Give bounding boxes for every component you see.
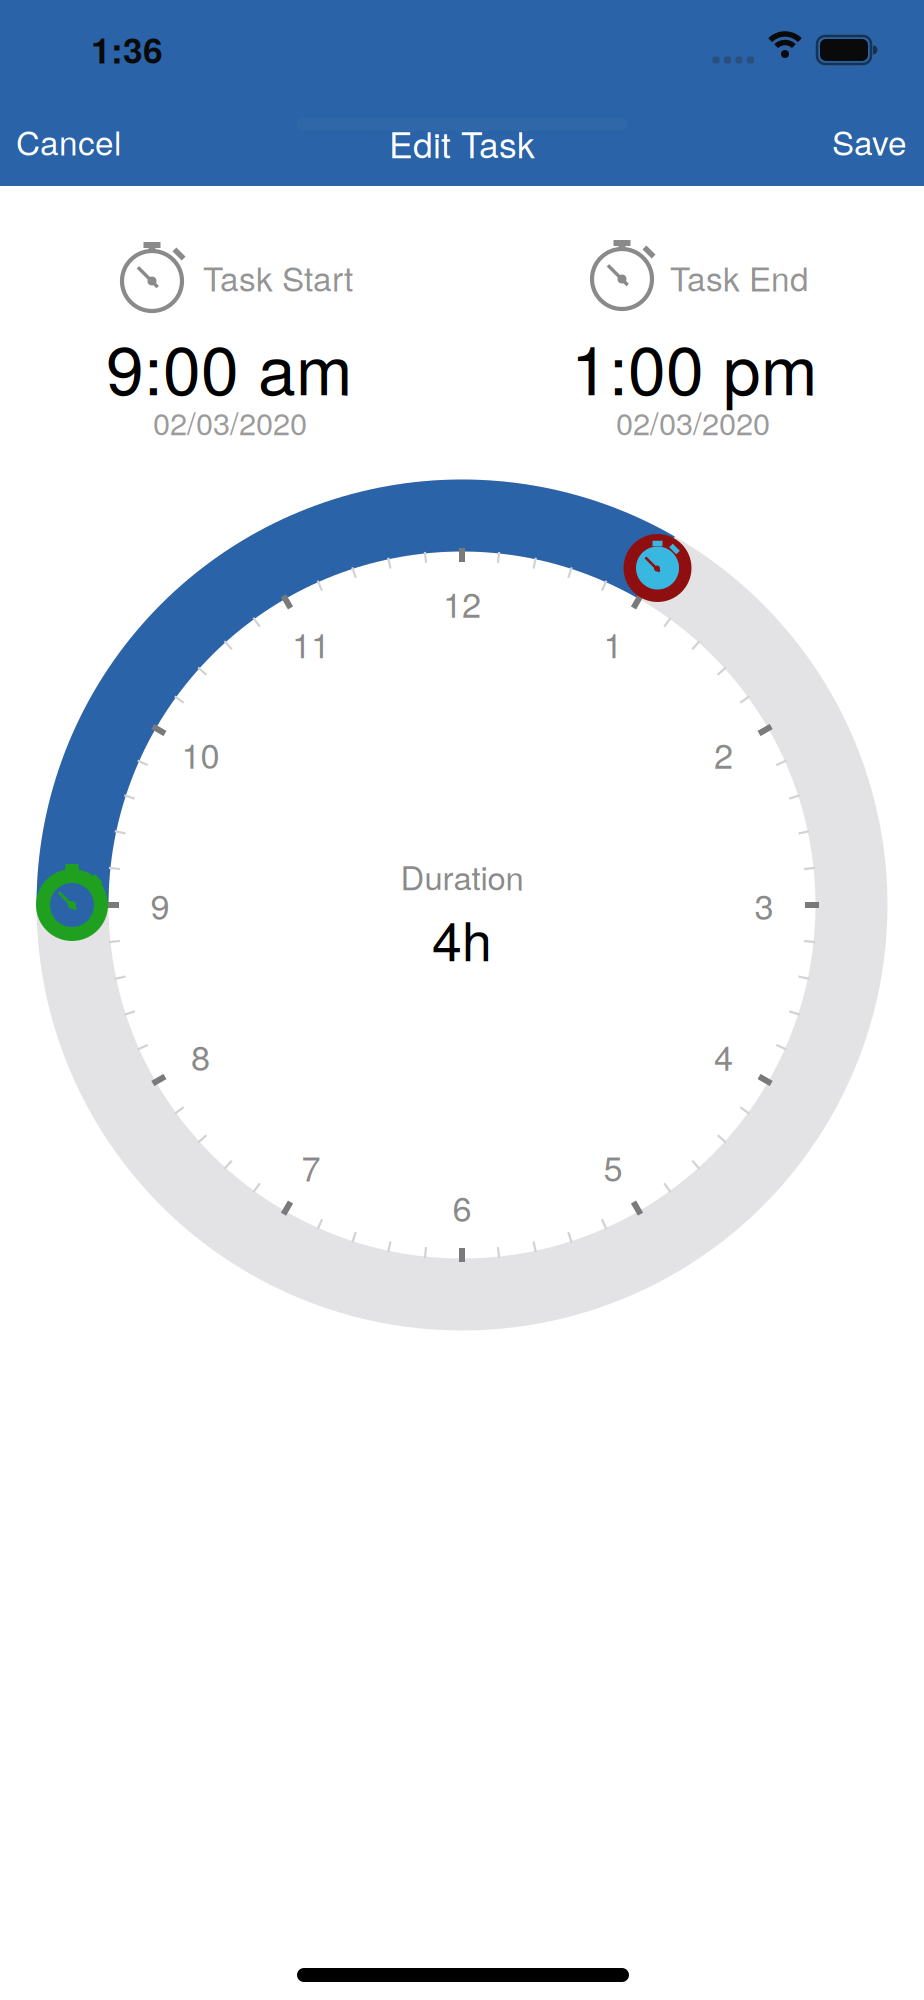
staticText: 7 [301,1142,320,1191]
staticText: 2 [714,729,733,779]
staticText: 02/03/2020 [153,400,307,444]
staticText: 9 [150,880,169,930]
staticText: Duration [400,852,523,899]
staticText: 3 [754,880,773,930]
staticText: 5 [603,1142,622,1191]
staticText: 11 [292,619,330,668]
staticText: 02/03/2020 [616,400,770,444]
staticText: 6 [452,1182,471,1232]
staticText: 10 [181,729,219,779]
staticText: 8 [191,1031,210,1081]
staticText: 4h [432,900,492,976]
staticText: 9:00 am [106,317,352,414]
staticText: 1:00 pm [571,317,817,414]
button[interactable]: Adjust start time [24,857,120,953]
staticText: Edit Task [389,118,535,168]
staticText: Task End [670,253,809,301]
staticText: 1:36 [91,24,163,74]
button[interactable]: Adjust end time [609,520,705,616]
staticText: Save [832,117,907,165]
staticText: 4 [714,1031,733,1081]
button[interactable]: Save [777,98,907,184]
staticText: 12 [443,578,481,628]
button[interactable]: Cancel [16,98,166,184]
staticText: Cancel [16,117,121,165]
staticText: Task Start [203,253,353,301]
staticText: 1 [603,619,622,668]
